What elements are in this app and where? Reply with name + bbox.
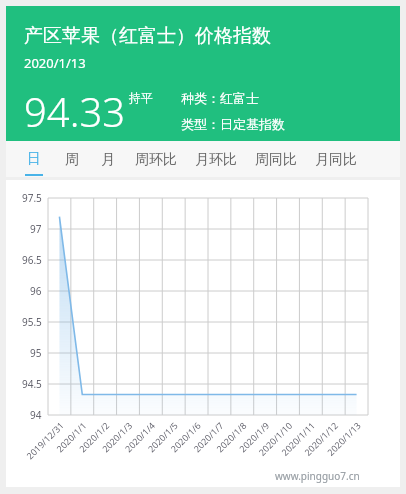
button[interactable]: 周环比 bbox=[128, 141, 184, 177]
staticText: 月环比 bbox=[195, 151, 237, 169]
staticText: 月 bbox=[101, 151, 115, 169]
button[interactable]: 月 bbox=[92, 141, 124, 177]
button[interactable]: 日 bbox=[16, 141, 52, 177]
button[interactable]: 月同比 bbox=[308, 141, 364, 177]
staticText: 持平 bbox=[129, 90, 153, 105]
staticText: 类型：日定基指数 bbox=[181, 116, 285, 132]
button[interactable]: 周同比 bbox=[248, 141, 304, 177]
staticText: 种类：红富士 bbox=[181, 90, 259, 106]
staticText: 周 bbox=[65, 151, 79, 169]
button[interactable]: 周 bbox=[56, 141, 88, 177]
staticText: 日 bbox=[27, 150, 41, 168]
staticText: 周环比 bbox=[135, 151, 177, 169]
staticText: 月同比 bbox=[315, 151, 357, 169]
button[interactable]: 月环比 bbox=[188, 141, 244, 177]
staticText: 94.33 bbox=[24, 84, 126, 138]
staticText: 2020/1/13 bbox=[24, 54, 86, 72]
staticText: 产区苹果（红富士）价格指数 bbox=[24, 24, 271, 48]
staticText: 周同比 bbox=[255, 151, 297, 169]
